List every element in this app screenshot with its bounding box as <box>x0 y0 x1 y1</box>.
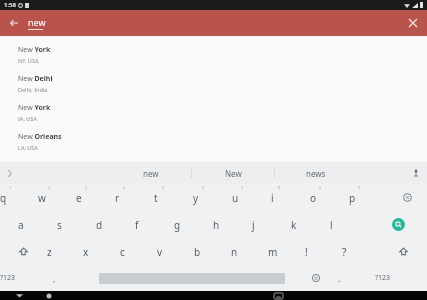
button[interactable]: r <box>115 184 120 211</box>
button[interactable]: Shift <box>0 238 47 265</box>
button[interactable]: i <box>271 184 274 211</box>
staticText: d <box>96 218 103 232</box>
staticText: h <box>213 218 220 232</box>
button[interactable]: Space <box>91 265 293 291</box>
staticText: s <box>57 218 62 232</box>
staticText: NY, USA <box>18 57 39 64</box>
staticText: v <box>157 245 163 259</box>
staticText: New Orleans <box>18 132 62 142</box>
button[interactable]: , <box>53 265 56 291</box>
button[interactable]: m <box>268 238 278 265</box>
staticText: u <box>232 191 239 205</box>
staticText: 7 <box>241 185 244 190</box>
button[interactable]: New <box>192 162 274 184</box>
button[interactable]: d <box>96 211 103 238</box>
button[interactable]: Clear search <box>404 14 422 32</box>
button[interactable]: . <box>338 265 341 291</box>
button[interactable]: a <box>18 211 24 238</box>
staticText: o <box>310 191 317 205</box>
staticText: Delhi, India <box>18 86 48 93</box>
staticText: y <box>193 191 199 205</box>
staticText: l <box>330 218 333 232</box>
staticText: 3 <box>85 185 88 190</box>
staticText: a <box>18 218 24 232</box>
button[interactable]: l <box>330 211 333 238</box>
staticText: m <box>268 245 278 259</box>
button[interactable]: v <box>157 238 163 265</box>
button[interactable]: j <box>252 211 255 238</box>
staticText: . <box>338 272 341 284</box>
button[interactable]: w <box>38 184 46 211</box>
staticText: b <box>194 245 201 259</box>
staticText: 2 <box>48 185 51 190</box>
button[interactable]: o <box>310 184 317 211</box>
button[interactable]: Home <box>42 291 56 300</box>
staticText: k <box>291 218 297 232</box>
staticText: p <box>349 191 356 205</box>
staticText: ?123 <box>0 273 16 283</box>
button[interactable]: ! <box>305 238 308 265</box>
button[interactable]: g <box>174 211 181 238</box>
button[interactable]: ? <box>342 238 347 265</box>
staticText: x <box>83 245 89 259</box>
button[interactable]: q <box>0 184 7 211</box>
button[interactable]: Backspace <box>388 184 427 211</box>
staticText: f <box>135 218 139 232</box>
button[interactable]: x <box>83 238 89 265</box>
button[interactable]: Back <box>4 13 24 33</box>
button[interactable]: n <box>231 238 238 265</box>
button[interactable]: ?123 <box>375 265 391 291</box>
staticText: 1 <box>9 185 12 190</box>
button[interactable]: New York <box>0 98 427 127</box>
button[interactable]: More suggestions <box>2 166 16 180</box>
staticText: n <box>231 245 238 259</box>
staticText: c <box>120 245 125 259</box>
staticText: j <box>252 218 255 232</box>
staticText: New York <box>18 45 51 55</box>
staticText: news <box>306 168 326 179</box>
button[interactable]: y <box>193 184 199 211</box>
staticText: g <box>174 218 181 232</box>
staticText: w <box>38 191 46 205</box>
button[interactable]: k <box>291 211 297 238</box>
button[interactable]: news <box>275 162 357 184</box>
button[interactable]: new <box>110 162 191 184</box>
button[interactable]: p <box>349 184 356 211</box>
button[interactable]: e <box>76 184 82 211</box>
button[interactable]: Back <box>12 291 26 300</box>
staticText: 4 <box>123 185 126 190</box>
button[interactable]: b <box>194 238 201 265</box>
staticText: i <box>271 191 274 205</box>
staticText: LA, USA <box>18 144 38 151</box>
button[interactable]: New Orleans <box>0 127 427 156</box>
button[interactable]: t <box>154 184 158 211</box>
staticText: r <box>115 191 120 205</box>
staticText: t <box>154 191 158 205</box>
staticText: e <box>76 191 82 205</box>
staticText: 5 <box>162 185 165 190</box>
button[interactable]: f <box>135 211 139 238</box>
button[interactable]: New York <box>0 40 427 69</box>
button[interactable]: z <box>47 238 52 265</box>
button[interactable]: Switch keyboard <box>270 291 286 300</box>
staticText: ? <box>342 245 347 259</box>
button[interactable]: New Delhi <box>0 69 427 98</box>
button[interactable]: c <box>120 238 125 265</box>
button[interactable]: u <box>232 184 239 211</box>
staticText: 6 <box>202 185 205 190</box>
button[interactable]: Shift <box>379 238 427 265</box>
staticText: New Delhi <box>18 74 53 84</box>
button[interactable]: Search <box>369 211 427 238</box>
button[interactable]: Voice input <box>409 166 423 180</box>
staticText: 9 <box>319 185 322 190</box>
staticText: New <box>225 168 242 179</box>
button[interactable]: ?123 <box>0 265 16 291</box>
button[interactable]: s <box>57 211 62 238</box>
staticText: 0 <box>358 185 361 190</box>
staticText: new <box>28 16 46 28</box>
staticText: ! <box>305 245 308 259</box>
button[interactable]: Emoji <box>293 265 338 291</box>
staticText: 1:58 <box>4 1 16 9</box>
button[interactable]: h <box>213 211 220 238</box>
